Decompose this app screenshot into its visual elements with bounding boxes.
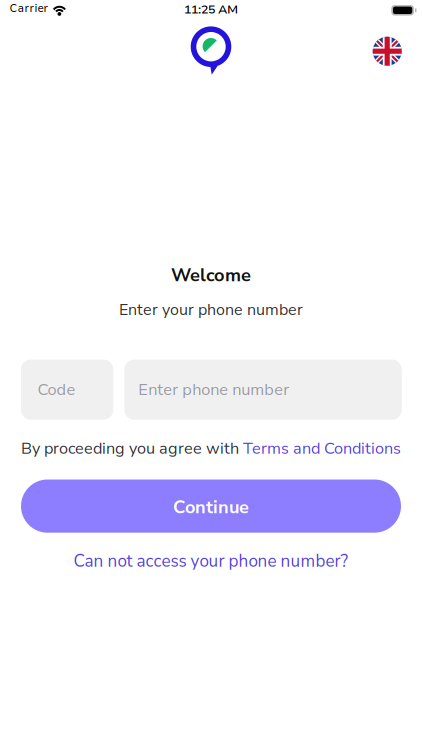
button[interactable]: Change language (365, 29, 409, 73)
staticText: Enter phone number (138, 378, 289, 401)
staticText: Welcome (171, 263, 251, 288)
staticText: Can not access your phone number? (73, 549, 348, 573)
staticText: Code (37, 378, 75, 401)
button[interactable]: Enter phone number (124, 359, 402, 420)
staticText: 11:25 AM (184, 1, 238, 18)
button[interactable]: Code (21, 359, 113, 420)
staticText: Carrier (9, 1, 48, 16)
button[interactable]: Continue (21, 479, 401, 533)
staticText: Enter your phone number (119, 299, 303, 321)
button[interactable]: Can not access your phone number? (73, 549, 348, 573)
staticText: By proceeding you agree with (21, 437, 243, 459)
button[interactable]: Terms and Conditions (243, 437, 401, 459)
staticText: Terms and Conditions (243, 437, 401, 459)
staticText: Continue (173, 495, 249, 520)
